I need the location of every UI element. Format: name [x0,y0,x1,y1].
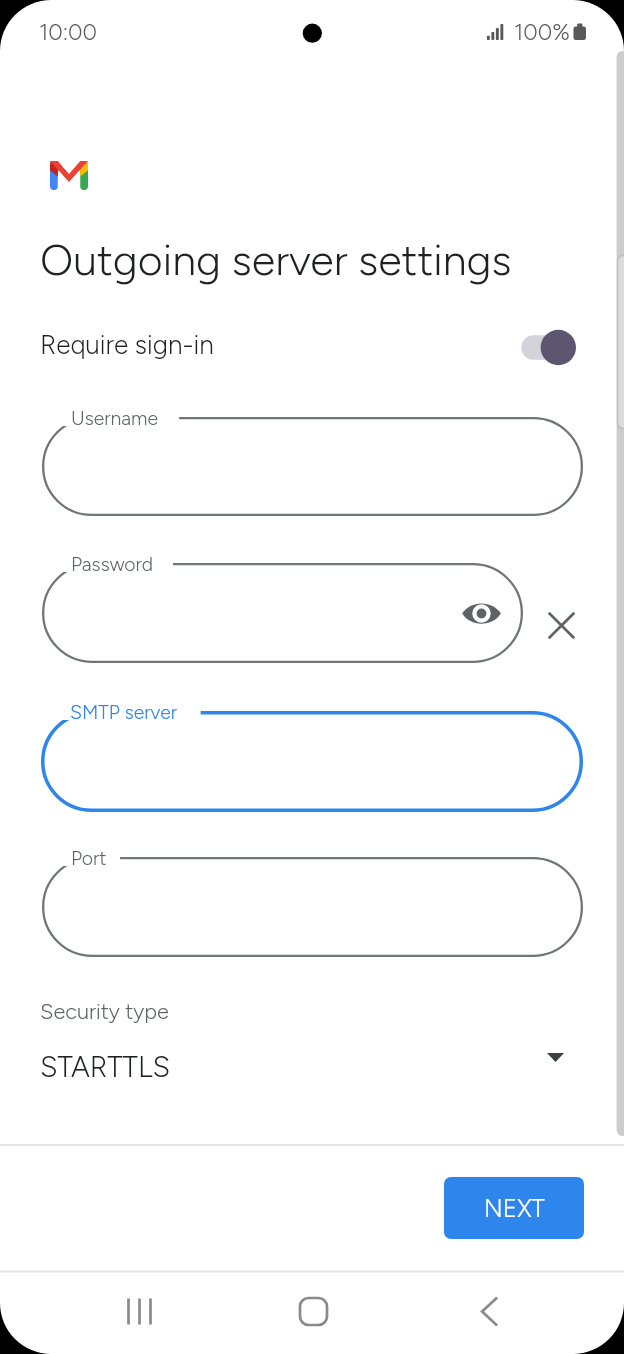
staticText: NEXT [484,1194,545,1223]
staticText: Outgoing server settings [40,234,512,286]
button[interactable]: NEXT [444,1177,584,1239]
button[interactable]: Back [464,1287,513,1336]
button[interactable]: Clear password [537,601,586,650]
staticText: 10:00 [39,18,98,45]
staticText: Password [71,553,154,576]
staticText: 100% [514,18,570,45]
button[interactable]: Home [289,1287,338,1336]
staticText: SMTP server [70,701,177,724]
staticText: Require sign-in [40,329,214,360]
button[interactable]: Password [42,563,523,663]
staticText: Username [71,407,158,430]
staticText: Port [71,847,107,870]
button[interactable]: Port [42,857,583,957]
button[interactable]: Recent apps [115,1287,164,1336]
button[interactable]: Show password [454,586,509,641]
button[interactable]: Username [42,417,583,516]
button[interactable]: STARTTLS [0,1045,624,1118]
staticText: Security type [40,998,169,1024]
button[interactable]: Require sign-in toggle [513,323,575,372]
button[interactable]: SMTP server [41,711,583,812]
staticText: STARTTLS [40,1050,171,1084]
